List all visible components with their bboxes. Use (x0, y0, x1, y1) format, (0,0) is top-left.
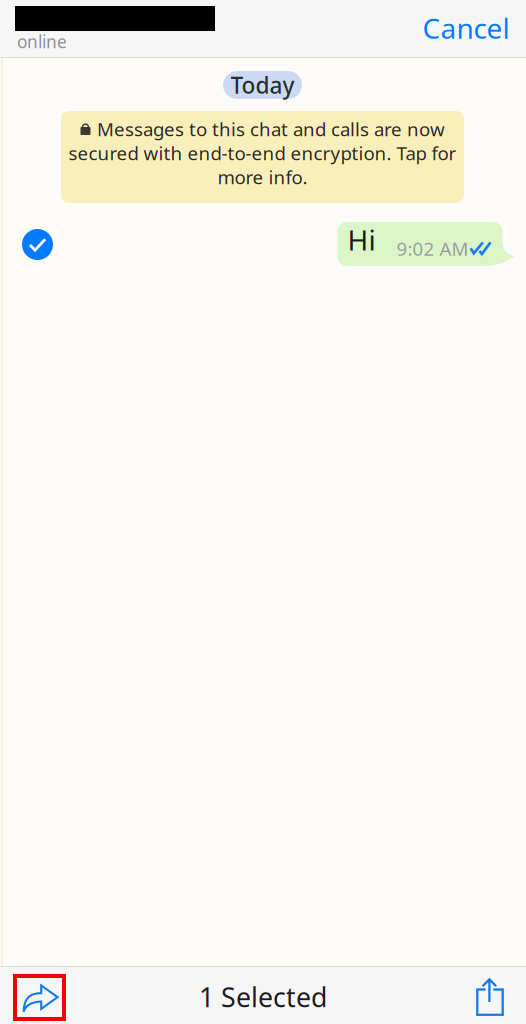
staticText: 9:02 AM (396, 236, 468, 261)
button[interactable]: 1 Selected (183, 975, 343, 1019)
button[interactable]: Contact info (15, 6, 275, 58)
staticText: Cancel (422, 9, 509, 47)
button[interactable]: Messages to this chat and calls are now (61, 111, 464, 203)
button[interactable]: Deselect message (22, 229, 53, 260)
button[interactable]: Share (468, 974, 512, 1020)
staticText: 1 Selected (199, 979, 327, 1015)
button[interactable]: Cancel (411, 5, 521, 51)
staticText: Hi (347, 221, 375, 258)
button[interactable]: Forward (15, 976, 64, 1019)
button[interactable]: Hi (338, 222, 514, 266)
staticText: Messages to this chat and calls are now (97, 117, 445, 141)
staticText: online (17, 30, 67, 53)
staticText: more info. (217, 165, 307, 189)
staticText: Today (230, 70, 294, 100)
staticText: secured with end-to-end encryption. Tap … (68, 141, 456, 165)
